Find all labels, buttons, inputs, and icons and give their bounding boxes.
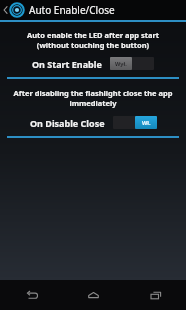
staticText: Wł. xyxy=(142,119,151,126)
button[interactable]: On Start Enable xyxy=(0,57,186,70)
button[interactable]: Recent apps xyxy=(124,280,186,310)
button[interactable]: Back xyxy=(0,280,62,310)
staticText: Auto enable the LED after app start (wit… xyxy=(10,30,176,50)
button[interactable]: On Disable Close xyxy=(0,116,186,129)
button[interactable]: Auto Enable/Close xyxy=(0,0,186,20)
staticText: Auto Enable/Close xyxy=(29,3,115,17)
staticText: On Start Enable xyxy=(32,58,102,70)
staticText: On Disable Close xyxy=(30,117,105,129)
button[interactable]: Wył. xyxy=(110,57,154,70)
staticText: Wył. xyxy=(115,60,127,67)
button[interactable]: Wł. xyxy=(113,116,157,129)
staticText: After disabling the flashlight close the… xyxy=(8,88,178,108)
button[interactable]: Home xyxy=(62,280,124,310)
